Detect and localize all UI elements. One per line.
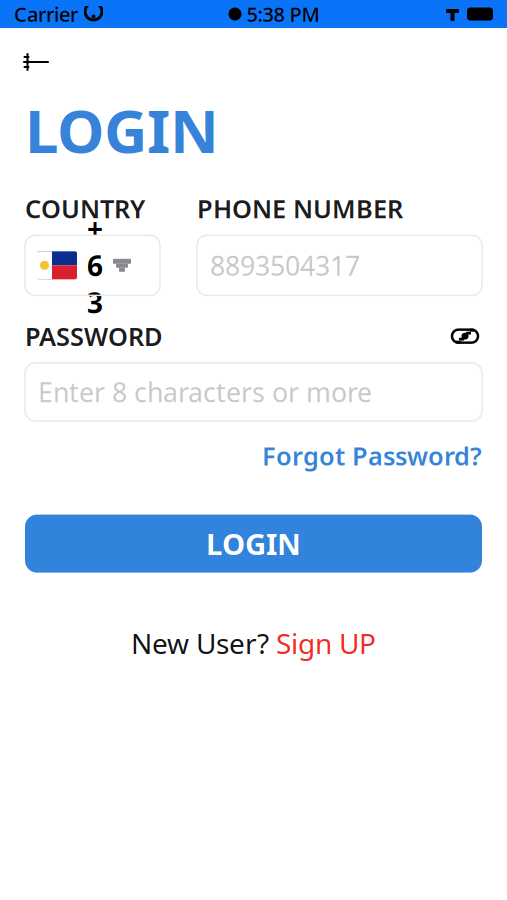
button[interactable]: Back	[10, 40, 62, 84]
button[interactable]: LOGIN	[25, 515, 482, 573]
staticText: 8893504317	[210, 248, 360, 283]
staticText: LOGIN	[25, 90, 219, 170]
staticText: Carrier	[14, 1, 78, 27]
staticText: Sign UP	[276, 625, 376, 662]
button[interactable]: Sign UP	[276, 625, 376, 662]
button[interactable]: +63	[25, 235, 160, 295]
staticText: Enter 8 characters or more	[38, 374, 372, 410]
button[interactable]: Enter 8 characters or more	[25, 363, 482, 421]
staticText: PHONE NUMBER	[197, 192, 403, 225]
staticText: PASSWORD	[25, 319, 163, 353]
staticText: LOGIN	[206, 524, 301, 563]
staticText: +63	[87, 209, 103, 321]
staticText: Forgot Password?	[262, 439, 482, 473]
staticText: COUNTRY	[25, 192, 145, 225]
staticText: 5:38 PM	[246, 1, 319, 27]
button[interactable]: 8893504317	[197, 235, 482, 295]
staticText: New User?	[131, 625, 276, 662]
button[interactable]: Show password	[448, 323, 482, 349]
button[interactable]: Forgot Password?	[262, 439, 482, 473]
